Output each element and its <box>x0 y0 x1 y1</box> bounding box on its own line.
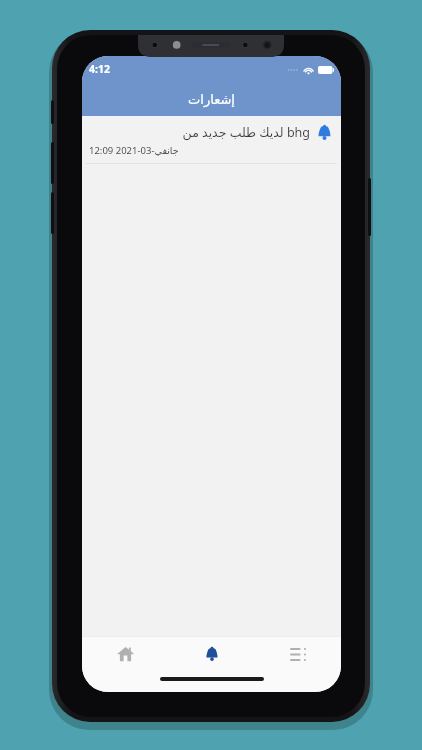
staticText: جانفي-03-2021 12:09 <box>89 144 179 157</box>
button[interactable]: Orders list <box>255 637 341 671</box>
button[interactable]: Notifications <box>169 637 255 671</box>
staticText: إشعارات <box>188 92 235 107</box>
staticText: لديك طلب جديد من bhg <box>182 124 310 141</box>
button[interactable]: لديك طلب جديد من bhg <box>82 116 341 164</box>
staticText: 4:12 <box>89 62 110 76</box>
button[interactable]: Home <box>82 637 169 671</box>
